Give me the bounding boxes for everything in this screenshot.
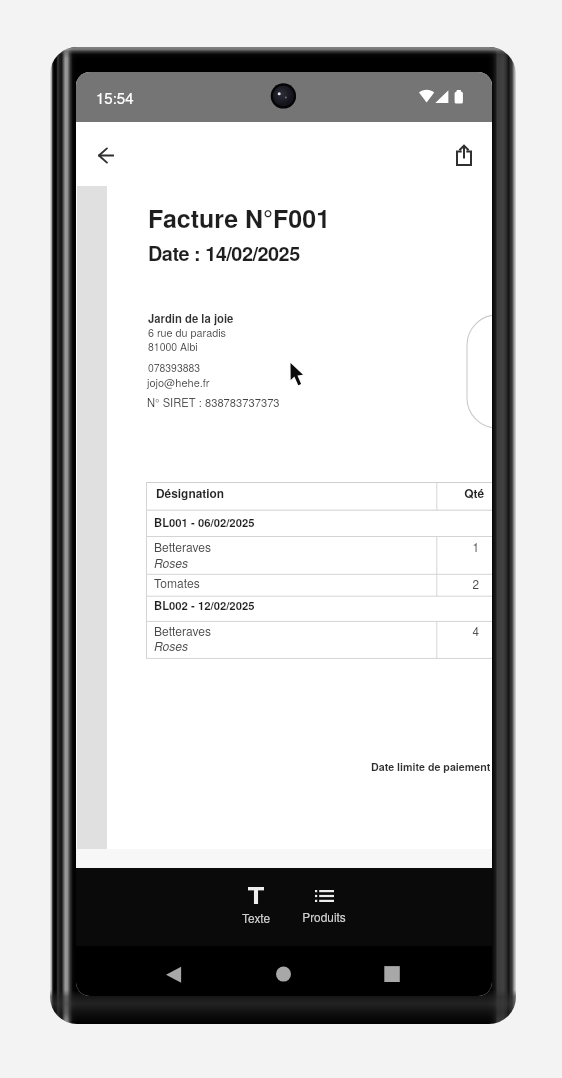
staticText: 1 [146, 538, 479, 555]
staticText: 2 [146, 575, 479, 592]
button[interactable]: Texte [224, 874, 288, 932]
staticText: N° SIRET : 838783737373 [147, 394, 280, 410]
staticText: Facture N°F001 [148, 200, 331, 236]
staticText: Betteraves [154, 538, 211, 555]
staticText: Texte [224, 909, 288, 926]
button[interactable]: Share [442, 133, 486, 177]
staticText: Qté [146, 485, 484, 502]
staticText: Désignation [156, 485, 225, 502]
staticText: 15:54 [96, 87, 134, 108]
staticText: Tomates [154, 574, 200, 591]
staticText: BL001 - 06/02/2025 [154, 514, 255, 530]
staticText: Date : 14/02/2025 [148, 239, 300, 267]
staticText: Date limite de paiement [371, 759, 491, 774]
button[interactable]: Produits [292, 874, 356, 932]
staticText: 81000 Albi [148, 339, 198, 354]
staticText: Betteraves [154, 622, 211, 639]
staticText: 6 rue du paradis [148, 325, 226, 340]
staticText: Jardin de la joie [148, 310, 234, 326]
staticText: 078393883 [148, 360, 200, 375]
staticText: BL002 - 12/02/2025 [154, 597, 255, 613]
staticText: Roses [154, 554, 189, 571]
staticText: 4 [146, 622, 479, 639]
staticText: Produits [292, 908, 356, 925]
button[interactable]: Back [84, 133, 128, 177]
staticText: jojo@hehe.fr [147, 374, 210, 390]
staticText: Roses [154, 637, 189, 654]
